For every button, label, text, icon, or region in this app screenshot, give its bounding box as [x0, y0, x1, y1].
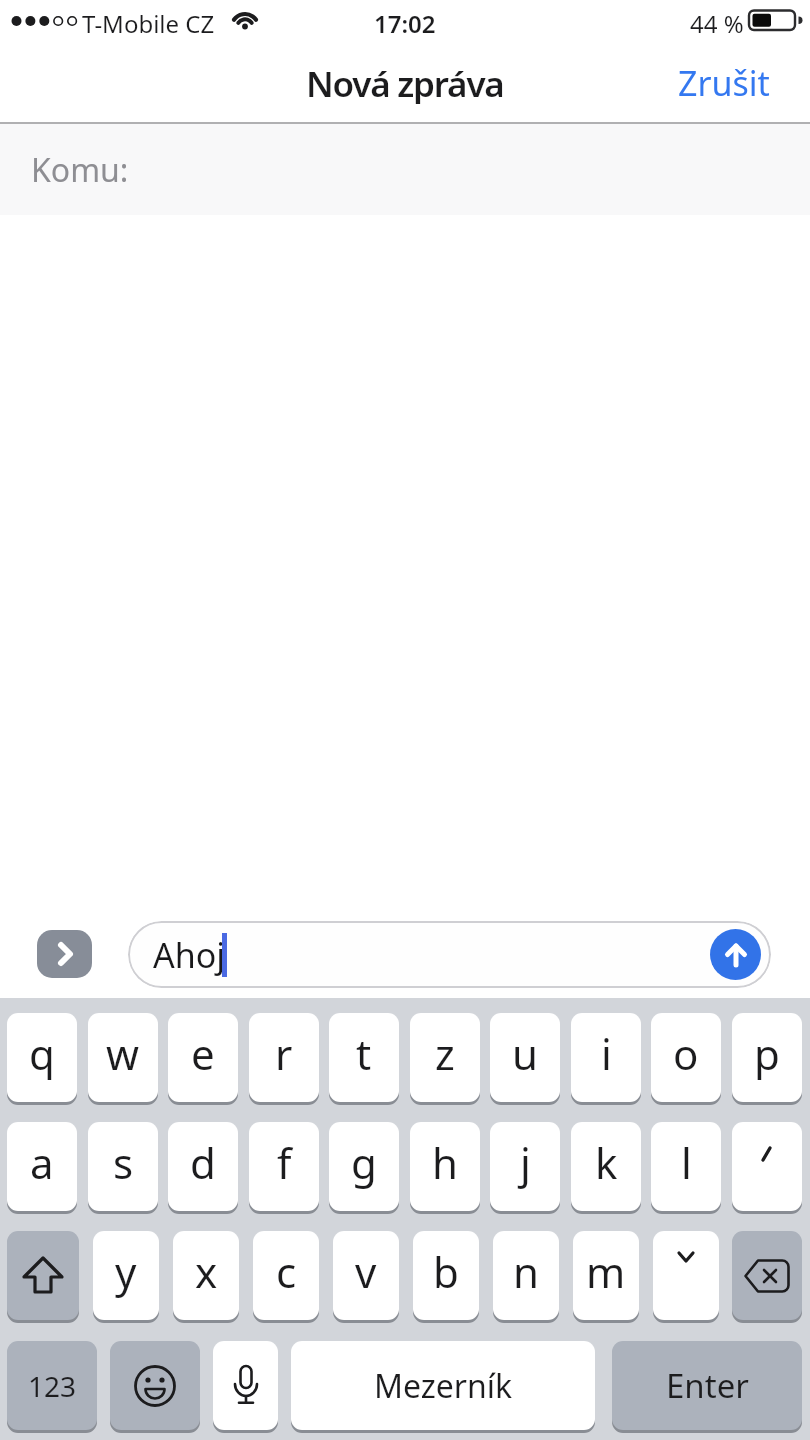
- button[interactable]: Zrušit: [640, 60, 780, 104]
- staticText: x: [195, 1243, 218, 1300]
- staticText: T-Mobile CZ: [82, 7, 215, 33]
- button[interactable]: Ahoj: [128, 921, 771, 988]
- staticText: h: [432, 1134, 458, 1191]
- staticText: r: [275, 1025, 293, 1082]
- button[interactable]: u: [490, 1013, 560, 1102]
- button[interactable]: [732, 1122, 802, 1211]
- staticText: Nová zpráva: [306, 60, 504, 104]
- button[interactable]: j: [490, 1122, 560, 1211]
- button[interactable]: b: [413, 1231, 479, 1320]
- staticText: l: [681, 1134, 692, 1191]
- staticText: v: [355, 1243, 377, 1300]
- button[interactable]: c: [253, 1231, 319, 1320]
- button[interactable]: a: [7, 1122, 77, 1211]
- staticText: Zrušit: [678, 60, 770, 104]
- button[interactable]: t: [329, 1013, 399, 1102]
- button[interactable]: i: [571, 1013, 641, 1102]
- staticText: t: [356, 1025, 372, 1082]
- button[interactable]: Mezerník: [291, 1341, 595, 1430]
- staticText: u: [512, 1025, 538, 1082]
- staticText: f: [277, 1134, 292, 1191]
- button[interactable]: m: [573, 1231, 639, 1320]
- button[interactable]: x: [173, 1231, 239, 1320]
- button[interactable]: [653, 1231, 719, 1320]
- button[interactable]: r: [249, 1013, 319, 1102]
- staticText: z: [435, 1025, 455, 1082]
- staticText: k: [595, 1134, 618, 1191]
- button[interactable]: v: [333, 1231, 399, 1320]
- staticText: n: [513, 1243, 539, 1300]
- button[interactable]: 123: [7, 1341, 97, 1430]
- button[interactable]: f: [249, 1122, 319, 1211]
- staticText: j: [520, 1134, 531, 1191]
- staticText: m: [586, 1243, 626, 1300]
- button[interactable]: z: [410, 1013, 480, 1102]
- button[interactable]: [710, 929, 761, 980]
- staticText: 44 %: [690, 7, 744, 33]
- staticText: 17:02: [374, 7, 436, 33]
- staticText: Komu:: [31, 148, 129, 192]
- button[interactable]: d: [168, 1122, 238, 1211]
- staticText: y: [115, 1243, 137, 1300]
- button[interactable]: o: [651, 1013, 721, 1102]
- staticText: e: [191, 1025, 215, 1082]
- button[interactable]: n: [493, 1231, 559, 1320]
- button[interactable]: s: [88, 1122, 158, 1211]
- staticText: a: [30, 1134, 54, 1191]
- staticText: q: [29, 1025, 55, 1082]
- button[interactable]: k: [571, 1122, 641, 1211]
- staticText: p: [754, 1025, 780, 1082]
- staticText: 123: [28, 1367, 77, 1405]
- button[interactable]: g: [329, 1122, 399, 1211]
- button[interactable]: [37, 930, 92, 978]
- button[interactable]: [7, 1231, 79, 1320]
- button[interactable]: Enter: [612, 1341, 802, 1430]
- staticText: o: [673, 1025, 699, 1082]
- staticText: Mezerník: [374, 1364, 513, 1408]
- button[interactable]: [213, 1341, 278, 1430]
- button[interactable]: y: [93, 1231, 159, 1320]
- staticText: Ahoj: [153, 932, 226, 978]
- button[interactable]: p: [732, 1013, 802, 1102]
- button[interactable]: w: [88, 1013, 158, 1102]
- staticText: c: [276, 1243, 297, 1300]
- button[interactable]: [732, 1231, 802, 1320]
- staticText: i: [601, 1025, 612, 1082]
- staticText: d: [190, 1134, 216, 1191]
- button[interactable]: e: [168, 1013, 238, 1102]
- button[interactable]: q: [7, 1013, 77, 1102]
- staticText: b: [433, 1243, 459, 1300]
- staticText: g: [351, 1134, 377, 1191]
- staticText: s: [113, 1134, 134, 1191]
- staticText: Enter: [666, 1363, 749, 1408]
- button[interactable]: Komu:: [0, 124, 810, 215]
- button[interactable]: h: [410, 1122, 480, 1211]
- button[interactable]: [110, 1341, 200, 1430]
- staticText: w: [106, 1025, 140, 1082]
- button[interactable]: l: [651, 1122, 721, 1211]
